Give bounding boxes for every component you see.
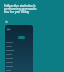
staticText: performing gymnastic [4, 7, 37, 11]
staticText: ab [5, 20, 9, 24]
button[interactable] [18, 36, 25, 39]
button[interactable] [6, 27, 11, 31]
staticText: tics for you today [4, 10, 30, 14]
staticText: Follow the statistics b [4, 4, 36, 8]
